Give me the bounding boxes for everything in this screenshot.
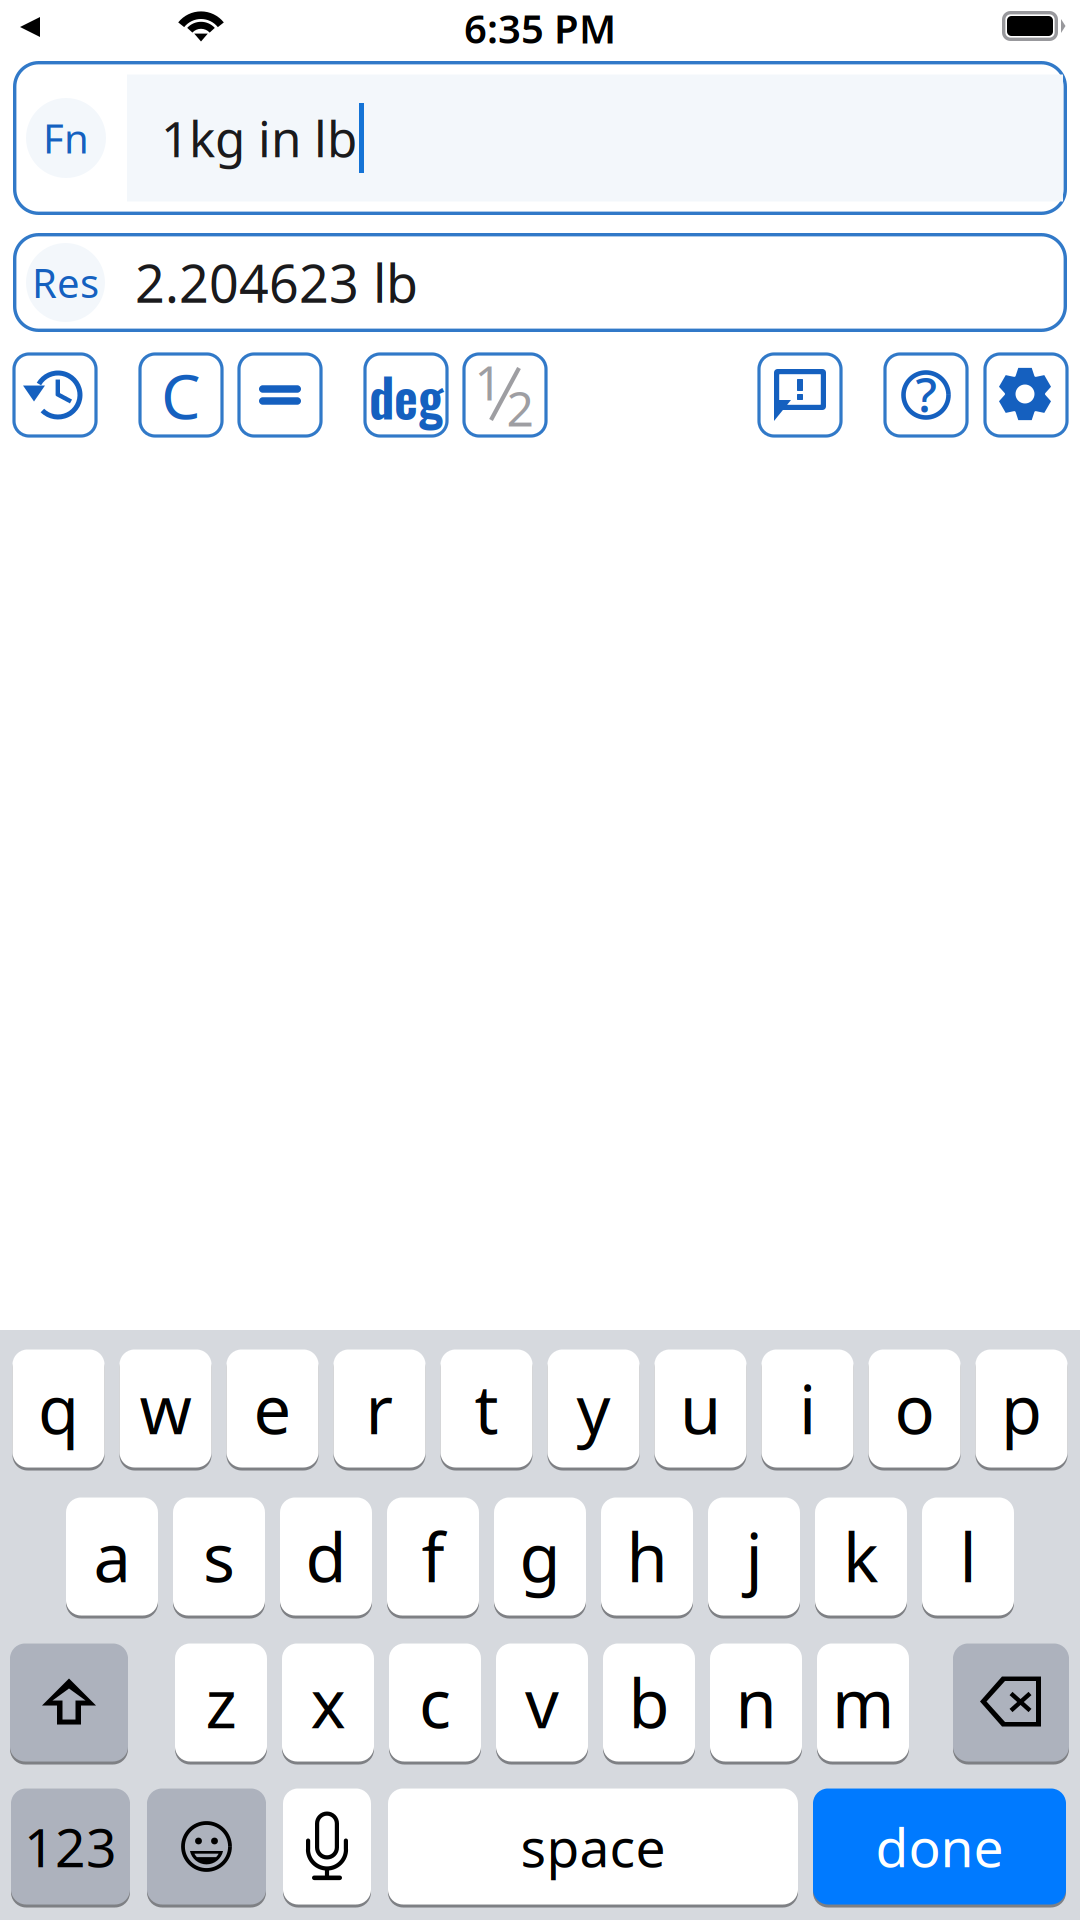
button[interactable]: b	[603, 1642, 695, 1763]
staticText: 2	[506, 376, 533, 440]
button[interactable]: r	[333, 1348, 425, 1469]
button[interactable]: k	[815, 1496, 907, 1617]
staticText: Res	[32, 256, 99, 309]
staticText: done	[875, 1811, 1003, 1882]
staticText: i	[799, 1364, 816, 1453]
staticText: q	[38, 1364, 79, 1453]
button[interactable]: Settings	[985, 354, 1067, 436]
staticText: x	[310, 1658, 345, 1747]
staticText: a	[93, 1512, 130, 1601]
staticText: o	[894, 1364, 934, 1453]
button[interactable]: g	[494, 1496, 586, 1617]
button[interactable]: Numbers	[11, 1787, 130, 1906]
staticText: space	[520, 1811, 665, 1882]
button[interactable]: l	[922, 1496, 1014, 1617]
button[interactable]: d	[280, 1496, 372, 1617]
button[interactable]: Dictate	[283, 1787, 371, 1906]
button[interactable]: y	[547, 1348, 639, 1469]
button[interactable]: p	[975, 1348, 1067, 1469]
staticText: l	[959, 1512, 976, 1601]
staticText: p	[1001, 1364, 1042, 1453]
button[interactable]: a	[66, 1496, 158, 1617]
button[interactable]: Equals	[239, 354, 321, 436]
staticText: m	[832, 1658, 894, 1747]
button[interactable]: n	[710, 1642, 802, 1763]
button[interactable]: o	[868, 1348, 960, 1469]
staticText: deg	[369, 357, 443, 435]
button[interactable]: c	[389, 1642, 481, 1763]
staticText: C	[161, 353, 201, 437]
staticText: 6:35 PM	[464, 1, 616, 54]
staticText: h	[626, 1512, 667, 1601]
button[interactable]: h	[601, 1496, 693, 1617]
staticText: n	[735, 1658, 776, 1747]
button[interactable]: Degrees	[365, 354, 447, 436]
staticText: j	[745, 1512, 762, 1601]
button[interactable]: v	[496, 1642, 588, 1763]
button[interactable]: z	[175, 1642, 267, 1763]
staticText: 2.204623 lb	[135, 248, 418, 317]
staticText: e	[253, 1364, 291, 1453]
button[interactable]: t	[440, 1348, 532, 1469]
button[interactable]: Fractions	[464, 354, 546, 436]
staticText: g	[519, 1512, 560, 1601]
button[interactable]: j	[708, 1496, 800, 1617]
button[interactable]: done	[813, 1787, 1066, 1906]
staticText: 1	[474, 350, 501, 414]
staticText: f	[421, 1512, 444, 1601]
button[interactable]: w	[119, 1348, 211, 1469]
button[interactable]: i	[761, 1348, 853, 1469]
staticText: r	[365, 1364, 393, 1453]
staticText: z	[205, 1658, 236, 1747]
staticText: Fn	[43, 111, 89, 164]
button[interactable]: m	[817, 1642, 909, 1763]
staticText: y	[576, 1364, 610, 1453]
staticText: c	[419, 1658, 451, 1747]
staticText: ?	[915, 362, 936, 426]
button[interactable]: space	[388, 1787, 798, 1906]
staticText: d	[305, 1512, 346, 1601]
button[interactable]: Help	[885, 354, 967, 436]
button[interactable]: History	[14, 354, 96, 436]
button[interactable]: Clear	[140, 354, 222, 436]
staticText: u	[680, 1364, 721, 1453]
button[interactable]: Functions	[26, 98, 106, 178]
staticText: t	[474, 1364, 498, 1453]
button[interactable]: u	[654, 1348, 746, 1469]
staticText: v	[525, 1658, 559, 1747]
staticText: s	[203, 1512, 235, 1601]
button[interactable]: Delete	[953, 1642, 1069, 1763]
button[interactable]: Emoji	[147, 1787, 266, 1906]
button[interactable]: Shift	[10, 1642, 128, 1763]
button[interactable]: q	[12, 1348, 104, 1469]
staticText: 123	[24, 1811, 117, 1882]
staticText: b	[628, 1658, 669, 1747]
button[interactable]: Feedback	[759, 354, 841, 436]
button[interactable]: e	[226, 1348, 318, 1469]
button[interactable]: x	[282, 1642, 374, 1763]
button[interactable]: f	[387, 1496, 479, 1617]
staticText: w	[139, 1364, 191, 1453]
staticText: k	[843, 1512, 879, 1601]
staticText: 1kg in lb	[161, 105, 357, 171]
button[interactable]: s	[173, 1496, 265, 1617]
